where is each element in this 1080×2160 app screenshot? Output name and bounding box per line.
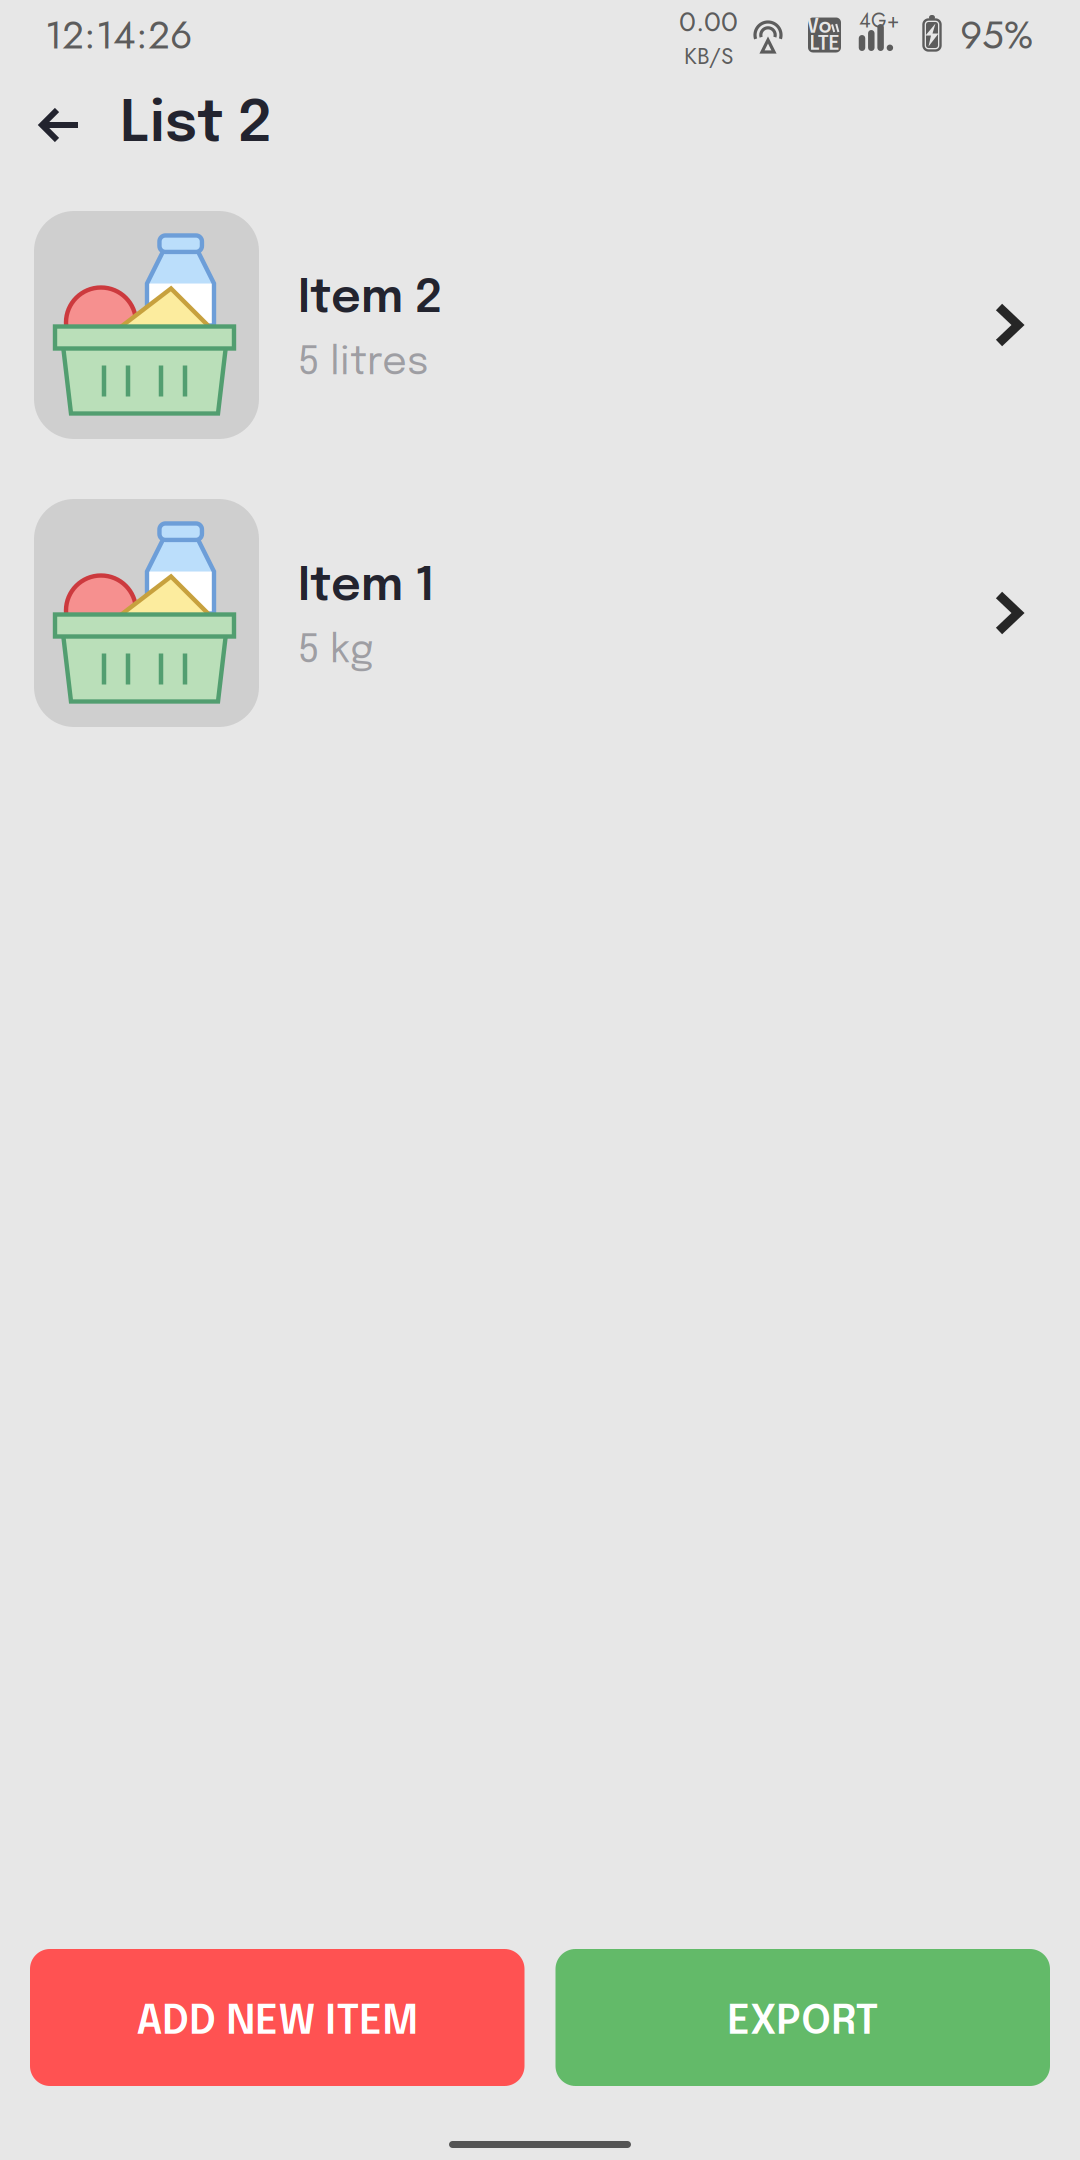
staticText: Item 2 (298, 276, 443, 323)
staticText: 4G+ (859, 6, 899, 35)
button[interactable]: Back (18, 80, 102, 170)
staticText: Vo (806, 17, 831, 37)
staticText: Item 1 (298, 564, 435, 611)
staticText: List 2 (120, 96, 272, 154)
staticText: 5 kg (298, 632, 374, 671)
button[interactable]: Item 2 (34, 211, 1080, 439)
staticText: ADD NEW ITEM (136, 2002, 418, 2043)
button[interactable]: EXPORT (555, 1949, 1050, 2086)
staticText: EXPORT (727, 2002, 878, 2043)
staticText: 0.00 (679, 1, 738, 42)
button[interactable]: Item 1 (34, 499, 1080, 727)
staticText: LTE (809, 34, 839, 54)
staticText: 5 litres (298, 344, 429, 383)
staticText: 95% (960, 7, 1033, 63)
staticText: KB/S (684, 40, 733, 73)
button[interactable]: ADD NEW ITEM (30, 1949, 524, 2086)
staticText: 12:14:26 (45, 7, 192, 63)
